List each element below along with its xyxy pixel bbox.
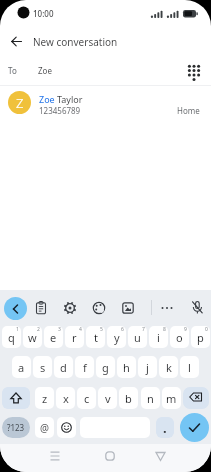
button[interactable] (92, 301, 106, 315)
staticText: ?123 (7, 422, 25, 433)
button[interactable] (180, 413, 209, 442)
staticText: 9 (184, 326, 187, 333)
staticText: 3 (58, 326, 61, 333)
button[interactable] (4, 297, 27, 320)
button[interactable] (183, 387, 209, 409)
button[interactable] (34, 301, 48, 315)
staticText: w (28, 330, 37, 345)
button[interactable]: q (2, 326, 21, 348)
button[interactable]: ?123 (2, 417, 30, 438)
staticText: 0 (205, 326, 208, 333)
staticText: Zoe (38, 65, 52, 76)
staticText: v (105, 391, 111, 406)
button[interactable]: g (96, 356, 115, 378)
staticText: j (146, 360, 149, 375)
button[interactable]: Z (0, 88, 211, 120)
staticText: p (197, 330, 204, 345)
button[interactable]: u (128, 326, 147, 348)
staticText: 123456789 (39, 105, 81, 116)
staticText: s (40, 360, 46, 375)
button[interactable]: a (12, 356, 31, 378)
button[interactable]: e (44, 326, 63, 348)
staticText: k (166, 360, 172, 375)
button[interactable]: i (149, 326, 168, 348)
button[interactable] (100, 446, 120, 466)
button[interactable]: f (75, 356, 94, 378)
staticText: z (42, 391, 48, 406)
button[interactable] (5, 30, 27, 52)
button[interactable]: . (156, 417, 174, 438)
staticText: i (157, 330, 160, 345)
staticText: 7 (142, 326, 145, 333)
staticText: Home (177, 105, 200, 116)
staticText: q (8, 330, 15, 345)
button[interactable] (45, 446, 65, 466)
button[interactable] (63, 301, 77, 315)
button[interactable] (160, 301, 174, 315)
button[interactable]: @ (35, 417, 54, 438)
staticText: x (63, 391, 69, 406)
staticText: o (176, 330, 183, 345)
staticText: @ (40, 421, 49, 435)
staticText: h (123, 360, 130, 375)
staticText: To (8, 65, 17, 76)
button[interactable]: o (170, 326, 189, 348)
button[interactable]: l (180, 356, 199, 378)
staticText: . (163, 419, 167, 437)
staticText: Zoe Taylor (39, 93, 83, 105)
staticText: b (125, 391, 132, 406)
staticText: r (72, 330, 77, 345)
staticText: d (60, 360, 67, 375)
button[interactable]: z (35, 387, 54, 409)
button[interactable]: r (65, 326, 84, 348)
staticText: New conversation (33, 35, 118, 49)
button[interactable]: s (33, 356, 52, 378)
button[interactable]: n (141, 387, 160, 409)
button[interactable]: v (98, 387, 117, 409)
staticText: e (50, 330, 57, 345)
button[interactable]: To (0, 58, 211, 85)
staticText: g (102, 360, 109, 375)
staticText: Z (16, 94, 24, 112)
staticText: a (18, 360, 25, 375)
button[interactable] (150, 446, 170, 466)
staticText: c (84, 391, 90, 406)
button[interactable]: j (138, 356, 157, 378)
staticText: 4 (79, 326, 82, 333)
staticText: 2 (37, 326, 40, 333)
staticText: t (94, 330, 98, 345)
button[interactable]: t (86, 326, 105, 348)
staticText: 5 (100, 326, 103, 333)
staticText: f (83, 360, 87, 375)
staticText: y (114, 330, 120, 345)
button[interactable]: b (119, 387, 138, 409)
button[interactable]: p (191, 326, 210, 348)
button[interactable]: c (77, 387, 96, 409)
staticText: n (147, 391, 154, 406)
button[interactable]: x (56, 387, 75, 409)
staticText: 10:00 (33, 8, 54, 19)
button[interactable] (121, 301, 135, 315)
button[interactable] (57, 417, 76, 438)
staticText: 8 (163, 326, 166, 333)
button[interactable]: w (23, 326, 42, 348)
button[interactable]: d (54, 356, 73, 378)
staticText: 6 (121, 326, 124, 333)
staticText: 1 (16, 326, 19, 333)
button[interactable] (2, 387, 30, 409)
button[interactable]: h (117, 356, 136, 378)
staticText: m (166, 391, 177, 406)
staticText: u (134, 330, 141, 345)
button[interactable]: m (162, 387, 181, 409)
button[interactable]: y (107, 326, 126, 348)
staticText: l (188, 360, 191, 375)
button[interactable] (190, 300, 205, 315)
button[interactable]: k (159, 356, 178, 378)
